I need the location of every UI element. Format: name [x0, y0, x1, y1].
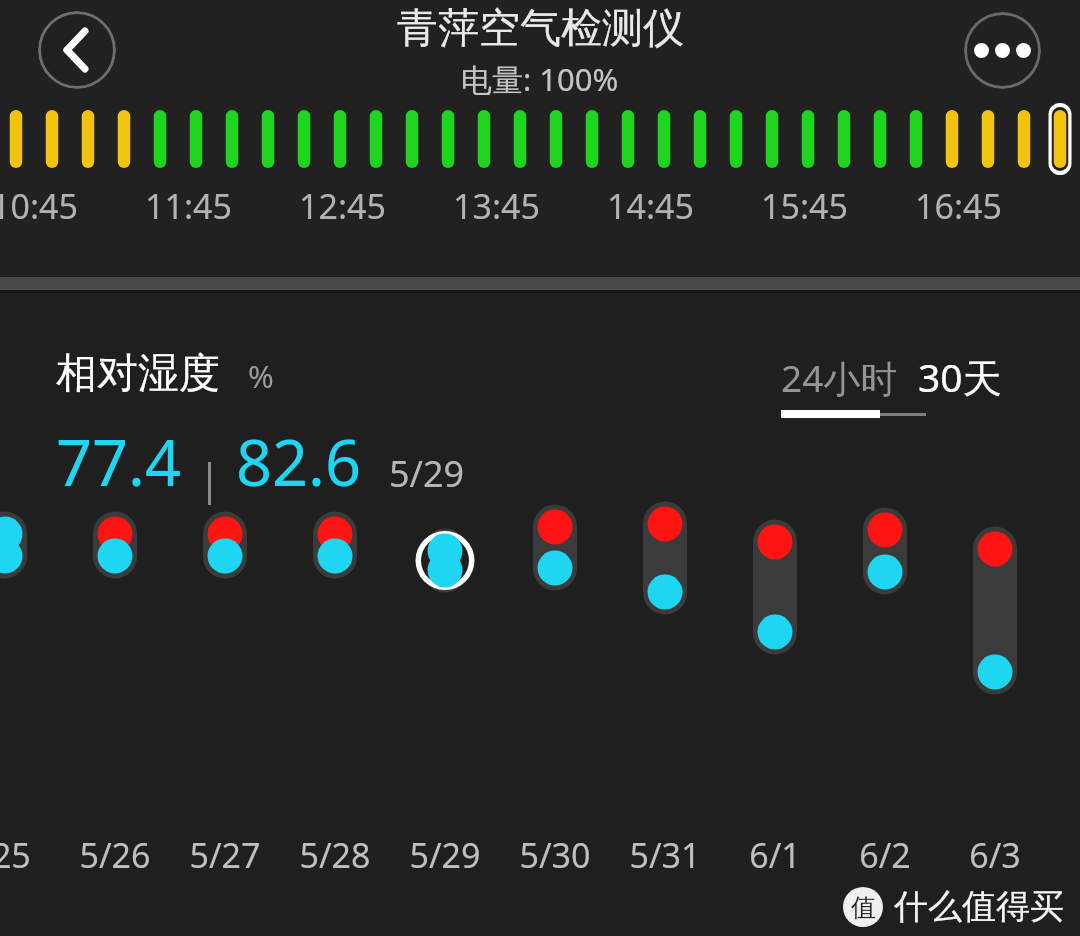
- staticText: 5/31: [610, 832, 720, 878]
- staticText: 13:45: [453, 183, 540, 229]
- button[interactable]: More options: [964, 12, 1041, 89]
- staticText: 青萍空气检测仪: [397, 3, 684, 55]
- staticText: 6/1: [720, 832, 830, 878]
- staticText: 5/28: [280, 832, 390, 878]
- staticText: %: [248, 355, 274, 397]
- staticText: 11:45: [145, 183, 232, 229]
- staticText: 值: [851, 892, 876, 923]
- button[interactable]: Back: [38, 11, 116, 89]
- button[interactable]: 24小时: [781, 352, 898, 403]
- staticText: 5/30: [500, 832, 610, 878]
- staticText: 77.4: [56, 419, 181, 505]
- staticText: 什么值得买: [894, 885, 1064, 928]
- staticText: 5/27: [170, 832, 280, 878]
- staticText: 15:45: [761, 183, 848, 229]
- staticText: 6/3: [940, 832, 1050, 878]
- staticText: 6/2: [830, 832, 940, 878]
- staticText: 10:45: [0, 183, 78, 229]
- staticText: 16:45: [915, 183, 1002, 229]
- staticText: 82.6: [236, 419, 361, 505]
- staticText: /25: [0, 832, 60, 878]
- staticText: 5/29: [390, 832, 500, 878]
- staticText: 14:45: [607, 183, 694, 229]
- button[interactable]: 30天: [918, 350, 1002, 403]
- staticText: 5/26: [60, 832, 170, 878]
- staticText: 5/29: [389, 449, 465, 498]
- staticText: 24小时: [781, 352, 898, 403]
- staticText: 电量: 100%: [461, 58, 619, 100]
- staticText: 相对湿度: [56, 348, 220, 400]
- staticText: 30天: [918, 350, 1002, 403]
- staticText: 12:45: [299, 183, 386, 229]
